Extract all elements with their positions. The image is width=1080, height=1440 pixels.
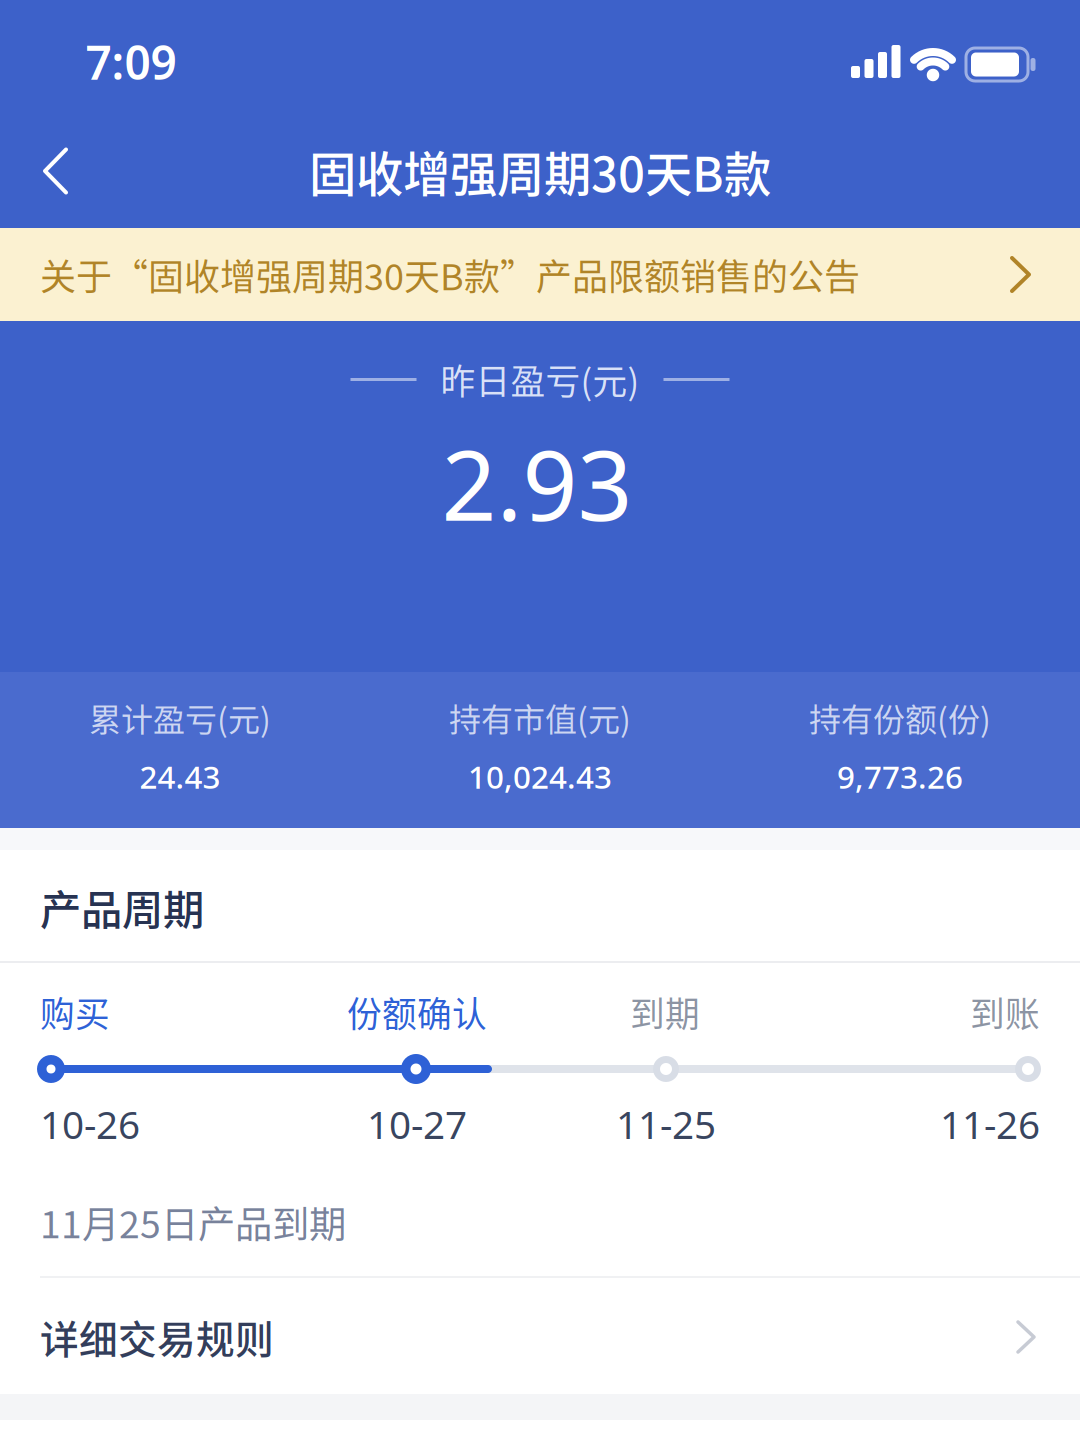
staticText: 到期 bbox=[630, 987, 700, 1037]
staticText: 7:09 bbox=[85, 31, 176, 93]
staticText: 9,773.26 bbox=[837, 755, 963, 798]
staticText: 11-26 bbox=[940, 1098, 1040, 1150]
staticText: 份额确认 bbox=[347, 987, 487, 1037]
staticText: 关于“固收增强周期30天B款”产品限额销售的公告 bbox=[40, 248, 860, 300]
staticText: 11-25 bbox=[616, 1098, 716, 1150]
button[interactable]: 详细交易规则 bbox=[0, 1302, 1080, 1372]
staticText: 10-27 bbox=[367, 1098, 467, 1150]
staticText: 持有份额(份) bbox=[809, 694, 991, 741]
staticText: 固收增强周期30天B款 bbox=[309, 137, 771, 205]
button[interactable]: Back bbox=[34, 140, 78, 201]
staticText: 持有市值(元) bbox=[449, 694, 631, 741]
staticText: 10,024.43 bbox=[468, 755, 612, 798]
staticText: 11月25日产品到期 bbox=[40, 1195, 346, 1249]
staticText: 累计盈亏(元) bbox=[89, 694, 271, 741]
button[interactable]: 关于“固收增强周期30天B款”产品限额销售的公告 bbox=[0, 228, 1080, 321]
staticText: 购买 bbox=[40, 987, 110, 1037]
staticText: 10-26 bbox=[40, 1098, 140, 1150]
staticText: 昨日盈亏(元) bbox=[440, 354, 639, 405]
staticText: 24.43 bbox=[139, 755, 220, 798]
staticText: 产品周期 bbox=[40, 877, 204, 937]
staticText: 2.93 bbox=[441, 418, 632, 549]
staticText: 到账 bbox=[970, 987, 1040, 1037]
staticText: 详细交易规则 bbox=[40, 1309, 274, 1365]
